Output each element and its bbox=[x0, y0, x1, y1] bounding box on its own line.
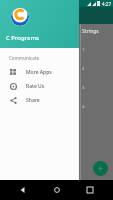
button[interactable]: Back bbox=[13, 180, 33, 200]
staticText: 4. bbox=[82, 104, 86, 109]
button[interactable]: Rate Us bbox=[0, 79, 79, 93]
button[interactable]: Home bbox=[47, 180, 67, 200]
staticText: C Programs bbox=[6, 34, 39, 42]
staticText: Strings bbox=[82, 28, 99, 35]
staticText: Share bbox=[26, 97, 40, 104]
staticText: 1. bbox=[82, 47, 86, 52]
staticText: 3. bbox=[82, 85, 86, 90]
button[interactable]: More Apps bbox=[0, 65, 79, 79]
staticText: 4:27 bbox=[102, 1, 111, 7]
button[interactable]: Share bbox=[0, 93, 79, 107]
staticText: Rate Us bbox=[26, 83, 45, 90]
staticText: 2. bbox=[82, 66, 86, 71]
staticText: More Apps bbox=[26, 69, 52, 76]
button[interactable]: Recents bbox=[80, 180, 100, 200]
button[interactable]: Add bbox=[93, 161, 108, 176]
staticText: Communicate bbox=[9, 55, 40, 61]
